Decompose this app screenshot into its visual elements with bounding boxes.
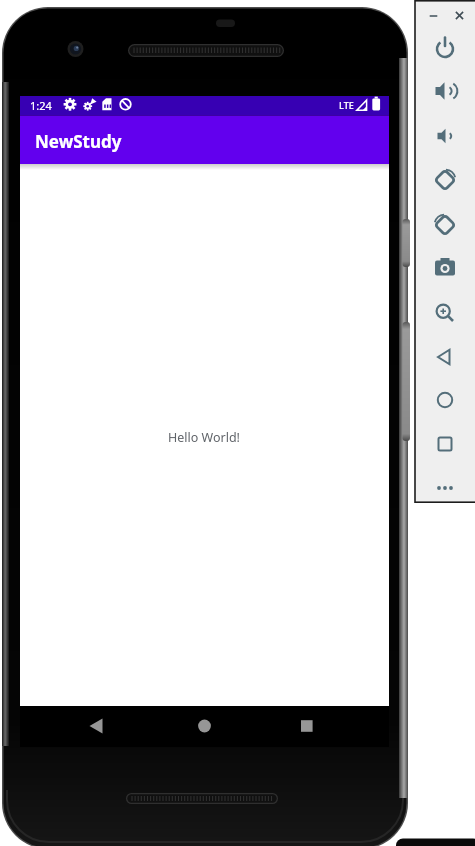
staticText: LTE (339, 99, 354, 111)
button[interactable] (427, 426, 463, 462)
button[interactable] (427, 470, 463, 506)
button[interactable] (76, 706, 116, 746)
button[interactable] (184, 706, 224, 746)
button[interactable] (286, 706, 326, 746)
staticText: Hello World! (168, 429, 240, 446)
button[interactable] (427, 250, 463, 286)
button[interactable] (450, 6, 469, 25)
button[interactable] (427, 31, 463, 67)
button[interactable] (427, 162, 463, 198)
button[interactable] (424, 6, 443, 25)
button[interactable] (427, 118, 463, 154)
staticText: NewStudy (35, 130, 122, 153)
button[interactable] (427, 382, 463, 418)
button[interactable] (427, 339, 463, 375)
button[interactable] (427, 73, 463, 109)
staticText: 1:24 (30, 98, 52, 113)
button[interactable] (427, 295, 463, 331)
button[interactable] (427, 207, 463, 243)
